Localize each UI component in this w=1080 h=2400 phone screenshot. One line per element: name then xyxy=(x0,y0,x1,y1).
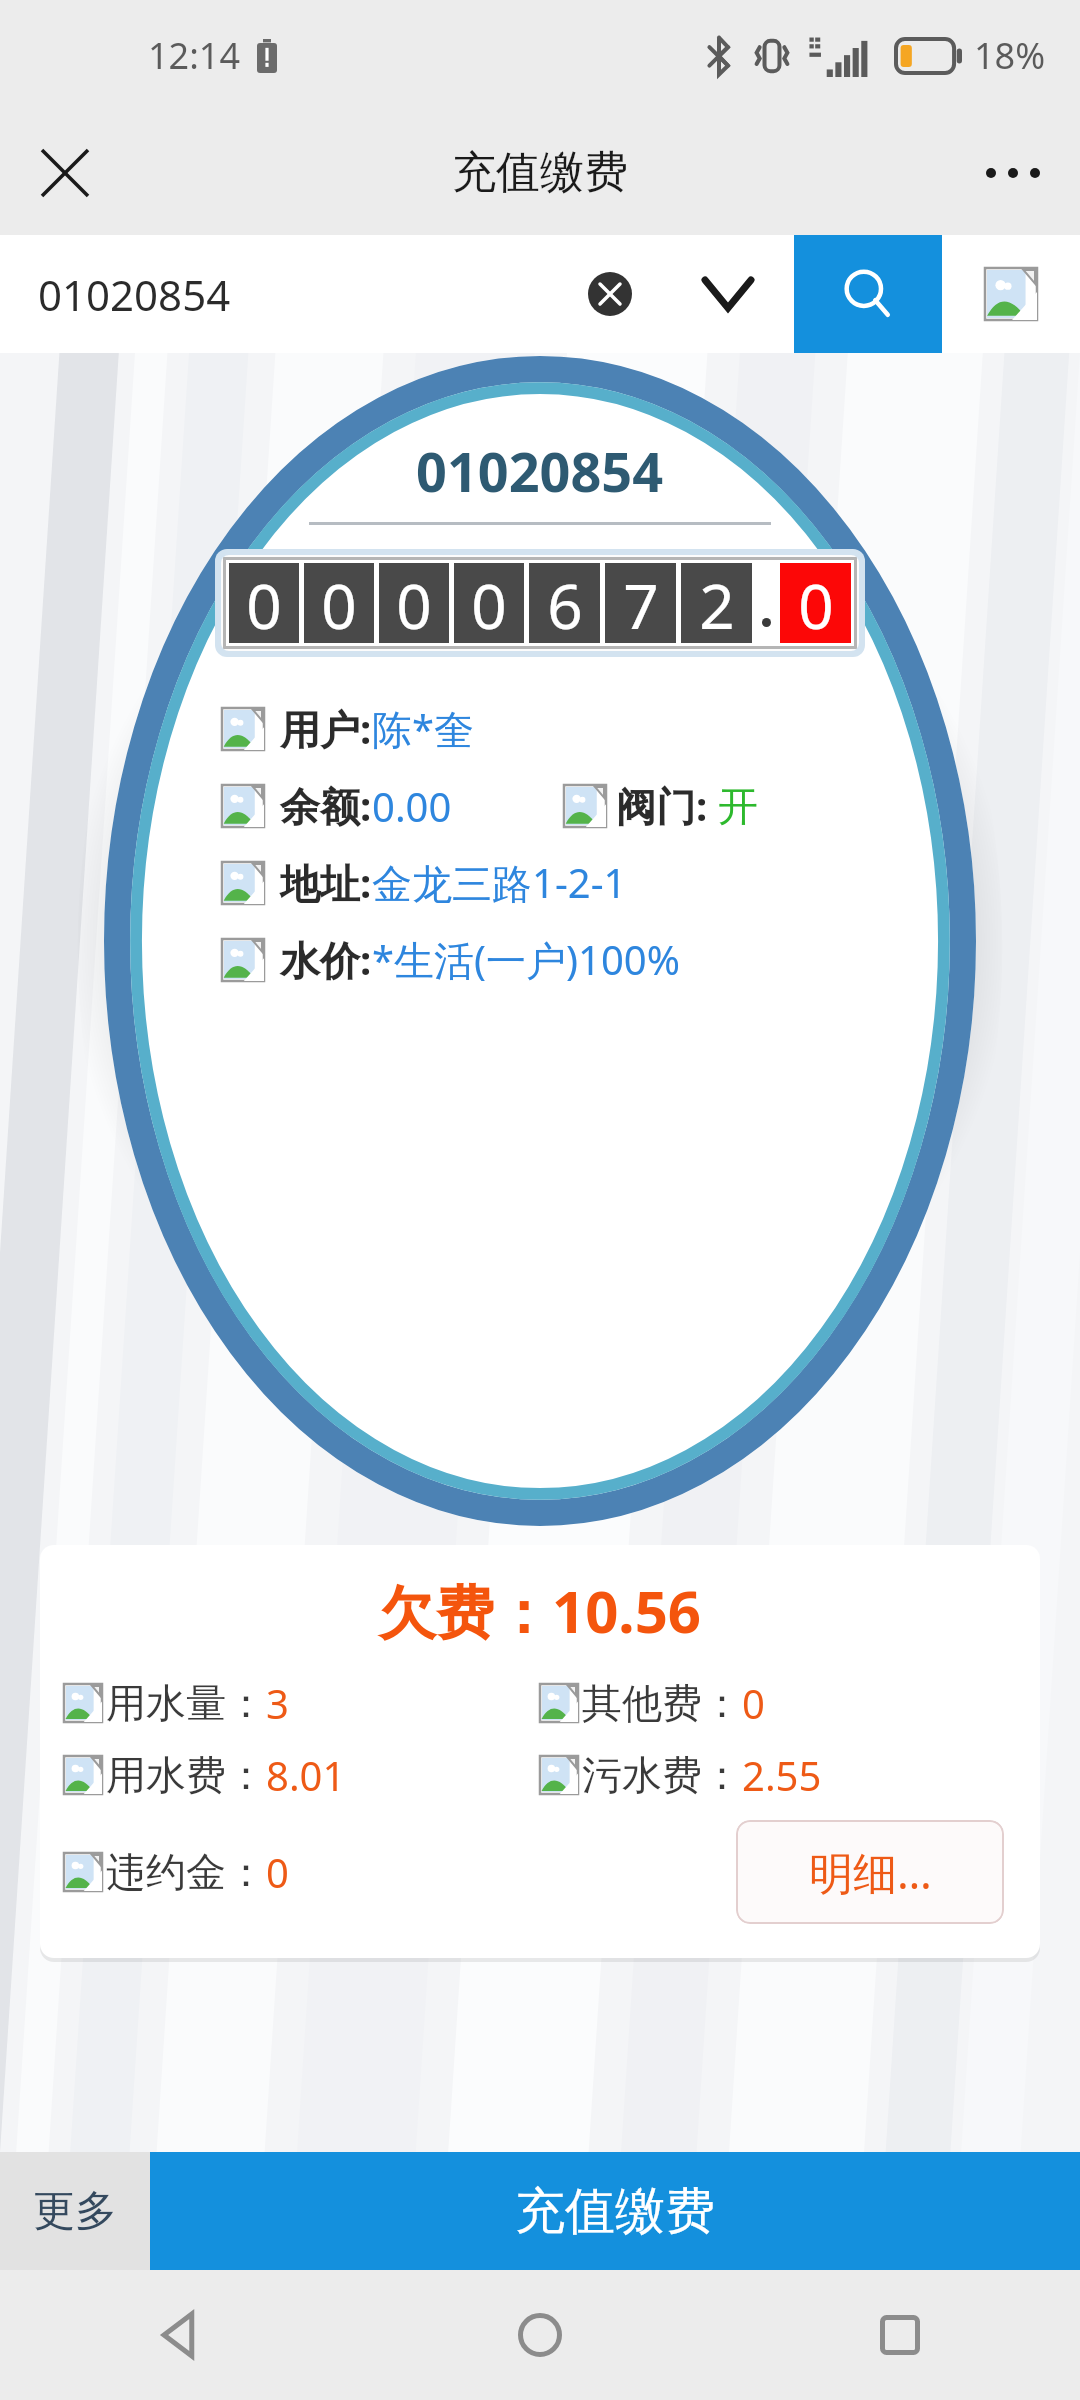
staticText: 0 xyxy=(742,1676,765,1730)
staticText: 其他费： xyxy=(582,1678,742,1728)
staticText: 明细… xyxy=(809,1842,932,1902)
staticText: 用户: xyxy=(280,701,372,756)
staticText: 0 xyxy=(321,563,357,643)
button[interactable]: Clear text xyxy=(562,246,658,342)
staticText: 8.01 xyxy=(266,1748,346,1802)
button[interactable]: Search xyxy=(794,235,942,353)
staticText: 12:14 xyxy=(148,31,241,80)
staticText: 0 xyxy=(471,563,507,643)
staticText: 7 xyxy=(623,563,659,643)
staticText: 欠费：10.56 xyxy=(378,1571,702,1650)
button[interactable]: Scan xyxy=(942,235,1080,353)
staticText: *生活(一户)100% xyxy=(372,932,680,987)
staticText: 金龙三路1-2-1 xyxy=(372,855,627,910)
staticText: 用水费： xyxy=(106,1750,266,1800)
staticText: 水价: xyxy=(280,932,372,987)
button[interactable]: Recent apps xyxy=(720,2270,1080,2400)
button[interactable]: Back xyxy=(0,2270,360,2400)
staticText: 阀门: xyxy=(616,778,718,833)
staticText: 违约金： xyxy=(106,1847,266,1897)
staticText: 陈*奎 xyxy=(372,701,475,756)
staticText: 18% xyxy=(974,31,1046,80)
staticText: 0 xyxy=(396,563,432,643)
staticText: 2.55 xyxy=(742,1748,822,1802)
button[interactable]: 充值缴费 xyxy=(150,2152,1080,2270)
staticText: 0 xyxy=(266,1845,289,1899)
staticText: 地址: xyxy=(280,855,372,910)
button[interactable]: 更多 xyxy=(0,2152,150,2270)
staticText: 3 xyxy=(266,1676,289,1730)
staticText: 01020854 xyxy=(38,266,231,323)
button[interactable]: Close xyxy=(10,118,120,228)
button[interactable]: Show history xyxy=(680,246,776,342)
staticText: 01020854 xyxy=(416,434,664,508)
button[interactable]: More options xyxy=(958,118,1068,228)
button[interactable]: 明细… xyxy=(736,1820,1004,1924)
staticText: 用水量： xyxy=(106,1678,266,1728)
staticText: 充值缴费 xyxy=(452,145,628,200)
staticText: 余额: xyxy=(280,778,372,833)
staticText: 充值缴费 xyxy=(515,2180,715,2243)
staticText: 更多 xyxy=(33,2185,117,2238)
staticText: 2 xyxy=(699,563,735,643)
staticText: 0 xyxy=(798,563,834,643)
staticText: 0 xyxy=(246,563,282,643)
staticText: 开 xyxy=(718,781,758,831)
staticText: 污水费： xyxy=(582,1750,742,1800)
staticText: 6 xyxy=(547,563,583,643)
staticText: 0.00 xyxy=(372,779,452,833)
button[interactable]: Home xyxy=(360,2270,720,2400)
